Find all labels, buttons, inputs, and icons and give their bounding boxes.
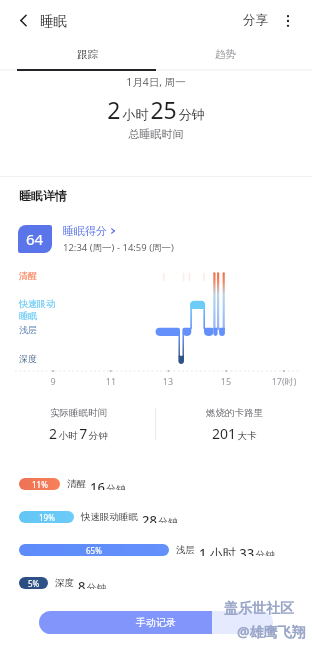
button[interactable]: Back (10, 7, 36, 33)
staticText: 睡眠 (19, 310, 37, 321)
staticText: 手动记录 (136, 616, 176, 629)
button[interactable]: 64 (0, 222, 312, 256)
button[interactable]: 手动记录 (39, 611, 273, 634)
staticText: 65% (86, 545, 102, 556)
staticText: 11 (81, 375, 141, 387)
staticText: 1 小时 33 分钟 (199, 544, 275, 556)
staticText: 睡眠 (40, 13, 67, 30)
staticText: 分享 (243, 12, 268, 28)
staticText: 17(时) (254, 375, 312, 387)
button[interactable]: 跟踪 (18, 40, 156, 72)
staticText: 1月4日, 周一 (0, 75, 312, 89)
staticText: 总睡眠时间 (0, 127, 312, 141)
staticText: 9 (23, 375, 83, 387)
staticText: 睡眠得分 (63, 224, 107, 238)
staticText: 28 分钟 (142, 511, 178, 523)
button[interactable]: More options (275, 8, 300, 33)
staticText: 睡眠详情 (19, 188, 67, 203)
staticText: 2 小时 25 分钟 (0, 94, 312, 125)
staticText: 15 (196, 375, 256, 387)
button[interactable]: 分享 (236, 9, 275, 31)
staticText: 燃烧的卡路里 (206, 407, 263, 419)
staticText: 201 大卡 (212, 424, 257, 443)
staticText: 趋势 (215, 48, 236, 61)
staticText: 19% (39, 512, 55, 523)
staticText: 16 分钟 (90, 478, 126, 490)
staticText: 清醒 (19, 270, 37, 281)
staticText: 11% (32, 479, 48, 490)
staticText: 快速眼动睡眠 (81, 511, 138, 523)
staticText: 浅层 (176, 544, 195, 556)
staticText: 浅层 (19, 324, 37, 335)
staticText: 快速眼动 (19, 298, 55, 309)
button[interactable]: 趋势 (156, 40, 294, 72)
staticText: 跟踪 (77, 48, 98, 61)
staticText: 2 小时 7 分钟 (49, 424, 108, 443)
staticText: 8 分钟 (78, 577, 106, 589)
staticText: 12:34 (周一) - 14:59 (周一) (63, 241, 174, 254)
staticText: 盖乐世社区 (224, 600, 294, 618)
staticText: 5% (28, 578, 40, 589)
staticText: 清醒 (67, 478, 86, 490)
staticText: 64 (26, 229, 44, 249)
staticText: 深度 (19, 353, 37, 364)
staticText: @雄鹰飞翔 (237, 622, 306, 641)
staticText: 深度 (55, 577, 74, 589)
staticText: 实际睡眠时间 (50, 407, 107, 419)
staticText: 13 (138, 375, 198, 387)
